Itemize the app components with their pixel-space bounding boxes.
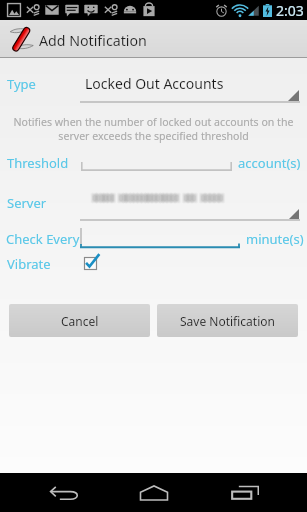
staticText: Type — [7, 75, 36, 93]
button[interactable]: Cancel — [9, 304, 150, 337]
button[interactable]: Locked Out Accounts — [80, 72, 300, 103]
button[interactable]: Back — [14, 473, 114, 512]
staticText: Check Every — [6, 230, 80, 248]
button[interactable]: Save Notification — [157, 304, 298, 337]
button[interactable] — [80, 228, 240, 249]
staticText: Threshold — [7, 154, 69, 172]
staticText: account(s) — [238, 154, 301, 172]
staticText: Save Notification — [180, 313, 275, 329]
staticText: Add Notification — [39, 31, 147, 50]
staticText: Cancel — [61, 313, 99, 329]
staticText: Notifies when the number of locked out a… — [0, 115, 307, 143]
button[interactable] — [81, 154, 232, 171]
button[interactable]: Home — [104, 473, 204, 512]
staticText: 2:03 — [276, 1, 304, 20]
staticText: minute(s) — [246, 230, 304, 248]
button[interactable] — [80, 194, 300, 221]
staticText: Locked Out Accounts — [85, 74, 224, 93]
staticText: Server — [7, 194, 47, 212]
button[interactable]: Vibrate — [84, 257, 97, 270]
button[interactable]: Recent apps — [195, 473, 295, 512]
staticText: Vibrate — [7, 255, 51, 273]
